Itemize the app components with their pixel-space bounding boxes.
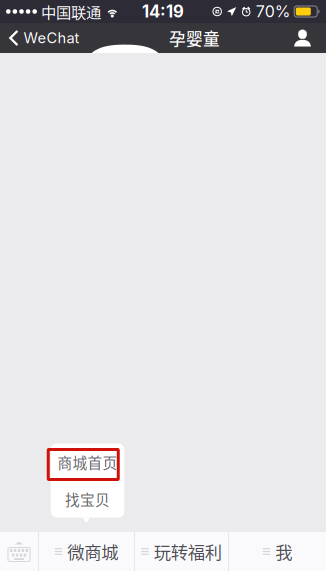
button[interactable]: 玩转福利 [135, 532, 228, 571]
button[interactable]: 找宝贝 [51, 480, 124, 517]
button[interactable]: 微商城 [39, 532, 134, 571]
staticText: 70% [256, 2, 291, 21]
staticText: 微商城 [67, 539, 118, 564]
button[interactable]: Keyboard [0, 532, 38, 571]
button[interactable]: 我 [229, 532, 326, 571]
button[interactable]: WeChat [0, 23, 90, 53]
staticText: 孕婴童 [169, 26, 220, 50]
staticText: 14:19 [142, 1, 184, 22]
staticText: 找宝贝 [65, 488, 110, 510]
staticText: 玩转福利 [154, 539, 222, 564]
button[interactable]: Profile [285, 24, 320, 51]
staticText: 中国联通 [41, 0, 101, 23]
button[interactable]: 商城首页 [51, 443, 124, 480]
staticText: WeChat [24, 29, 80, 47]
staticText: 我 [275, 539, 292, 564]
staticText: 商城首页 [57, 451, 117, 473]
